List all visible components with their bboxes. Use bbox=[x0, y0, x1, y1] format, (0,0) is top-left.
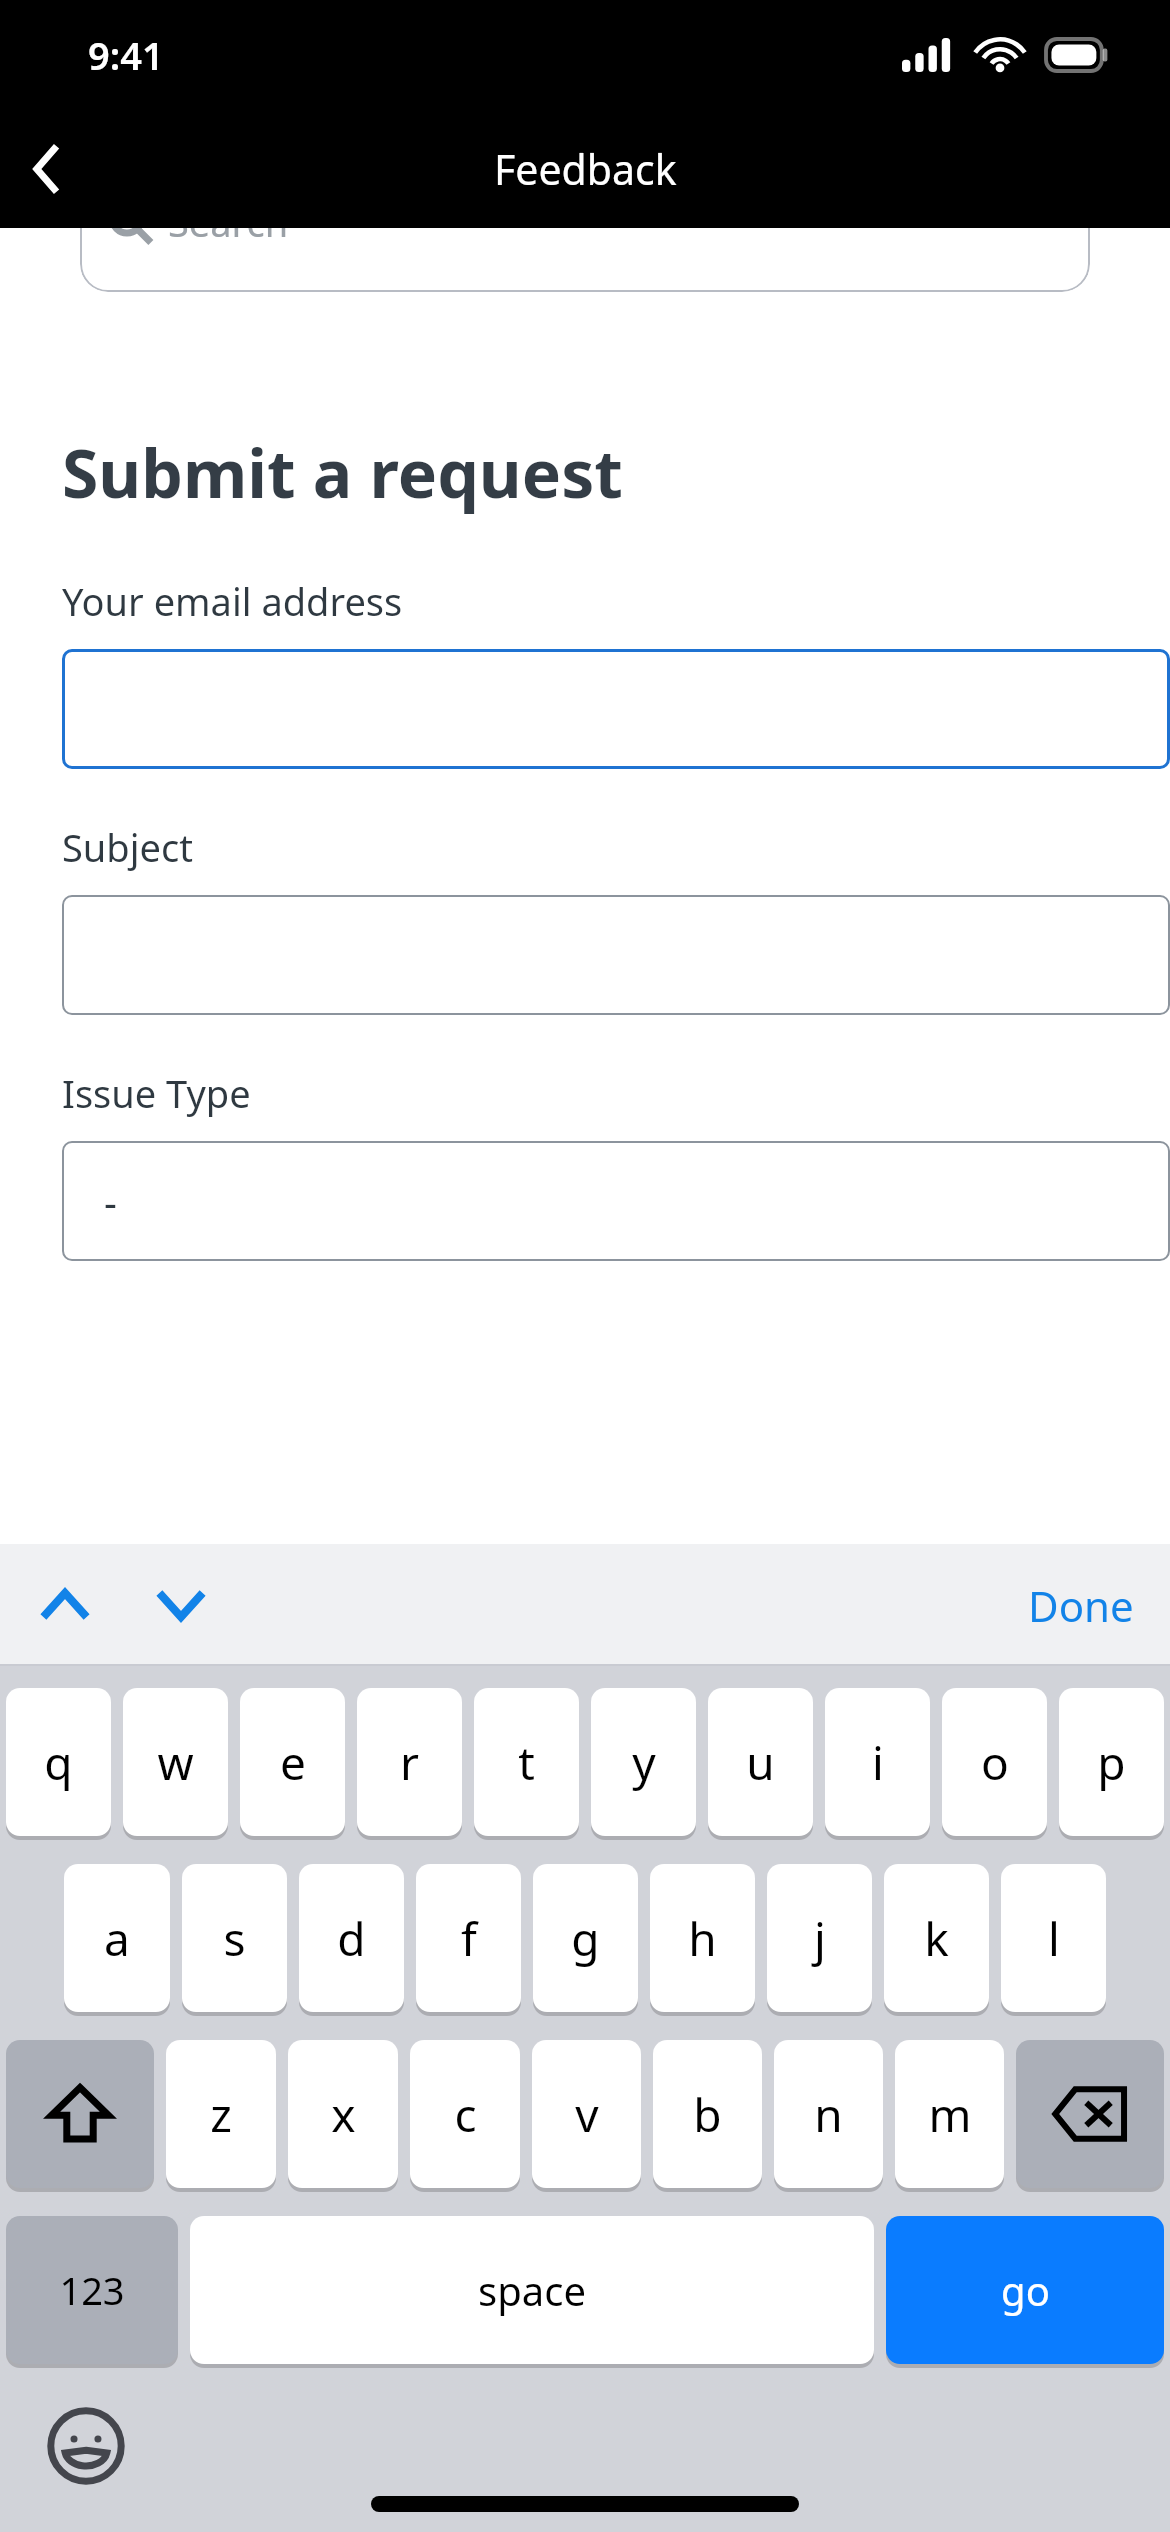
staticText: Feedback bbox=[494, 141, 677, 197]
staticText: r bbox=[400, 1731, 419, 1794]
staticText: g bbox=[571, 1907, 600, 1970]
button[interactable]: space bbox=[190, 2216, 874, 2364]
button[interactable]: y bbox=[591, 1688, 696, 1836]
button[interactable]: Previous field bbox=[30, 1570, 100, 1640]
button[interactable]: - bbox=[62, 1141, 1170, 1261]
staticText: f bbox=[461, 1907, 477, 1970]
button[interactable]: l bbox=[1001, 1864, 1106, 2012]
button[interactable]: m bbox=[895, 2040, 1004, 2188]
staticText: o bbox=[981, 1731, 1009, 1794]
staticText: - bbox=[104, 1174, 117, 1228]
button[interactable] bbox=[62, 649, 1170, 769]
staticText: y bbox=[632, 1731, 656, 1794]
button[interactable]: a bbox=[64, 1864, 170, 2012]
staticText: n bbox=[814, 2083, 843, 2146]
staticText: Done bbox=[1028, 1577, 1134, 1634]
staticText: u bbox=[746, 1731, 775, 1794]
staticText: Search bbox=[168, 196, 289, 248]
button[interactable]: q bbox=[6, 1688, 111, 1836]
button[interactable]: Back bbox=[14, 131, 90, 207]
staticText: i bbox=[872, 1731, 884, 1794]
staticText: p bbox=[1097, 1731, 1126, 1794]
staticText: 9:41 bbox=[88, 29, 164, 81]
button[interactable] bbox=[62, 895, 1170, 1015]
staticText: Your email address bbox=[62, 575, 403, 627]
staticText: k bbox=[924, 1907, 949, 1970]
button[interactable]: b bbox=[653, 2040, 762, 2188]
staticText: d bbox=[337, 1907, 366, 1970]
button[interactable]: g bbox=[533, 1864, 638, 2012]
staticText: go bbox=[1001, 2263, 1050, 2317]
staticText: e bbox=[280, 1731, 306, 1794]
staticText: a bbox=[104, 1907, 130, 1970]
button[interactable]: x bbox=[288, 2040, 398, 2188]
button[interactable]: v bbox=[532, 2040, 641, 2188]
button[interactable]: o bbox=[942, 1688, 1047, 1836]
staticText: s bbox=[223, 1907, 246, 1970]
button[interactable]: Next field bbox=[146, 1570, 216, 1640]
button[interactable]: e bbox=[240, 1688, 345, 1836]
staticText: Issue Type bbox=[62, 1067, 251, 1119]
staticText: j bbox=[814, 1907, 826, 1970]
button[interactable]: r bbox=[357, 1688, 462, 1836]
button[interactable]: u bbox=[708, 1688, 813, 1836]
button[interactable]: s bbox=[182, 1864, 287, 2012]
button[interactable]: Search bbox=[80, 152, 1090, 292]
button[interactable]: c bbox=[410, 2040, 520, 2188]
button[interactable]: n bbox=[774, 2040, 883, 2188]
staticText: x bbox=[331, 2083, 356, 2146]
staticText: 123 bbox=[59, 2264, 125, 2316]
button[interactable]: go bbox=[886, 2216, 1164, 2364]
button[interactable]: 123 bbox=[6, 2216, 178, 2364]
button[interactable]: z bbox=[166, 2040, 276, 2188]
button[interactable]: j bbox=[767, 1864, 872, 2012]
staticText: h bbox=[688, 1907, 717, 1970]
button[interactable]: t bbox=[474, 1688, 579, 1836]
button[interactable]: Backspace bbox=[1016, 2040, 1164, 2188]
button[interactable]: i bbox=[825, 1688, 930, 1836]
staticText: m bbox=[928, 2083, 972, 2146]
staticText: Subject bbox=[62, 821, 193, 873]
staticText: l bbox=[1048, 1907, 1060, 1970]
staticText: space bbox=[478, 2263, 586, 2317]
button[interactable]: Emoji keyboard bbox=[44, 2404, 128, 2488]
button[interactable]: k bbox=[884, 1864, 989, 2012]
staticText: c bbox=[454, 2083, 477, 2146]
button[interactable]: d bbox=[299, 1864, 404, 2012]
staticText: Submit a request bbox=[62, 427, 623, 517]
staticText: z bbox=[210, 2083, 232, 2146]
button[interactable]: w bbox=[123, 1688, 228, 1836]
staticText: v bbox=[575, 2083, 599, 2146]
staticText: b bbox=[693, 2083, 722, 2146]
staticText: t bbox=[518, 1731, 535, 1794]
button[interactable]: h bbox=[650, 1864, 755, 2012]
staticText: q bbox=[44, 1731, 73, 1794]
button[interactable]: Shift bbox=[6, 2040, 154, 2188]
button[interactable]: p bbox=[1059, 1688, 1164, 1836]
button[interactable]: Done bbox=[1016, 1567, 1146, 1644]
button[interactable]: f bbox=[416, 1864, 521, 2012]
staticText: w bbox=[157, 1731, 194, 1794]
